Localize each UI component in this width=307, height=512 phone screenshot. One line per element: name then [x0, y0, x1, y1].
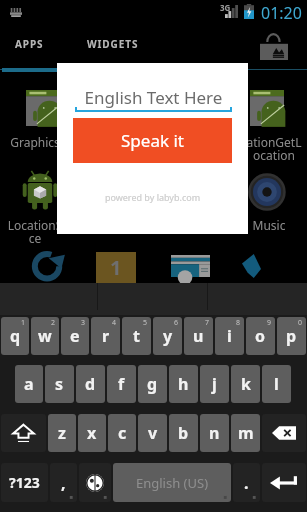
button[interactable]: j	[200, 365, 229, 403]
staticText: p	[286, 325, 297, 347]
button[interactable]: s	[45, 365, 74, 403]
staticText: 1	[110, 254, 122, 281]
staticText: ▪	[103, 493, 108, 500]
button[interactable]: Shop	[256, 29, 292, 63]
button[interactable]	[32, 252, 67, 285]
staticText: 0	[298, 318, 303, 328]
staticText: 4	[112, 318, 117, 328]
button[interactable]: g	[138, 365, 167, 403]
staticText: c	[118, 422, 127, 444]
staticText: t	[133, 325, 140, 347]
staticText: d	[85, 373, 96, 395]
staticText: Music	[214, 217, 307, 233]
button[interactable]: f	[107, 365, 136, 403]
button[interactable]: a	[15, 365, 43, 403]
staticText: s	[55, 373, 64, 395]
staticText: ▪	[252, 493, 257, 500]
button[interactable]: d	[76, 365, 105, 403]
button[interactable]: y	[153, 317, 182, 355]
staticText: 8	[236, 318, 241, 328]
staticText: q	[10, 325, 21, 347]
button[interactable]	[171, 255, 210, 277]
button[interactable]: WIDGETS	[68, 25, 158, 72]
button[interactable]: o	[246, 317, 275, 355]
staticText: o	[255, 325, 266, 347]
staticText: 01:20	[261, 2, 302, 24]
button[interactable]: x	[78, 414, 106, 452]
staticText: m	[238, 422, 254, 444]
staticText: English (US)	[136, 474, 209, 492]
button[interactable]: Speak it	[73, 118, 232, 163]
button[interactable]: English (US)	[113, 463, 231, 502]
staticText: v	[148, 422, 158, 444]
staticText: w	[38, 325, 52, 347]
staticText: Speak it	[121, 129, 184, 152]
staticText: n	[209, 422, 220, 444]
button[interactable]: Delete	[262, 414, 306, 452]
staticText: 9	[267, 318, 272, 328]
staticText: k	[241, 373, 251, 395]
button[interactable]: r	[91, 317, 120, 355]
button[interactable]: Shift	[1, 414, 46, 452]
button[interactable]: h	[169, 365, 198, 403]
staticText: APPS	[15, 37, 44, 51]
staticText: l	[274, 373, 279, 395]
button[interactable]	[249, 174, 285, 210]
button[interactable]: l	[262, 365, 291, 403]
button[interactable]	[22, 170, 58, 213]
button[interactable]: p	[277, 317, 306, 355]
staticText: 1	[21, 318, 26, 328]
button[interactable]: u	[184, 317, 213, 355]
staticText: ▪	[223, 493, 228, 500]
button[interactable]: Language	[79, 463, 111, 502]
staticText: 2	[51, 318, 56, 328]
button[interactable]	[250, 90, 284, 126]
button[interactable]: ?123	[1, 463, 48, 502]
staticText: 3G	[220, 2, 231, 13]
staticText: .	[244, 472, 249, 494]
button[interactable]: .	[233, 463, 260, 502]
staticText: e	[70, 325, 80, 347]
button[interactable]: k	[231, 365, 260, 403]
staticText: ?123	[9, 473, 40, 492]
staticText: z	[58, 422, 66, 444]
staticText: WIDGETS	[87, 37, 139, 51]
staticText: j	[212, 373, 217, 395]
staticText: 7	[205, 318, 210, 328]
staticText: g	[147, 373, 158, 395]
button[interactable]: APPS	[2, 25, 57, 72]
staticText: f	[118, 373, 125, 395]
staticText: a	[24, 373, 34, 395]
staticText: h	[178, 373, 189, 395]
staticText: 5	[143, 318, 148, 328]
staticText: ationGetL ocation	[219, 134, 307, 164]
button[interactable]: m	[231, 414, 260, 452]
staticText: x	[87, 422, 97, 444]
button[interactable]: e	[61, 317, 89, 355]
staticText: LocationS ce	[0, 217, 90, 247]
button[interactable]: Enter	[262, 463, 306, 502]
staticText: r	[102, 325, 110, 347]
button[interactable]: c	[108, 414, 136, 452]
button[interactable]: n	[200, 414, 229, 452]
staticText: 6	[174, 318, 179, 328]
button[interactable]: 1	[96, 252, 136, 283]
staticText: i	[227, 325, 232, 347]
staticText: Graphics	[0, 134, 90, 150]
button[interactable]: i	[215, 317, 244, 355]
staticText: powered by labyb.com	[57, 191, 248, 203]
button[interactable]: ,	[50, 463, 77, 502]
button[interactable]	[242, 254, 261, 278]
staticText: b	[178, 422, 189, 444]
button[interactable]: w	[31, 317, 59, 355]
button[interactable]: q	[1, 317, 29, 355]
button[interactable]: t	[122, 317, 151, 355]
button[interactable]	[26, 90, 60, 126]
staticText: y	[163, 325, 173, 347]
button[interactable]: z	[48, 414, 76, 452]
staticText: ▪	[69, 493, 74, 500]
button[interactable]: b	[169, 414, 198, 452]
staticText: English Text Here	[73, 86, 234, 109]
staticText: ,	[61, 472, 66, 494]
button[interactable]: v	[138, 414, 167, 452]
